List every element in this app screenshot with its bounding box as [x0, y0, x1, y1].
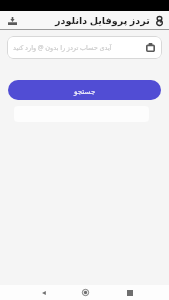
button[interactable]: Downloads: [4, 13, 20, 29]
button[interactable]: Recents: [121, 285, 139, 300]
staticText: تردز پروفایل دانلودر: [55, 14, 150, 27]
button[interactable]: جستجو: [8, 80, 161, 100]
staticText: آیدی حساب تردز را بدون @ وارد کنید: [13, 43, 112, 52]
button[interactable]: Paste: [145, 42, 156, 53]
staticText: جستجو: [74, 87, 96, 95]
button[interactable]: آیدی حساب تردز را بدون @ وارد کنید: [7, 36, 162, 59]
button[interactable]: Home: [76, 285, 94, 300]
button[interactable]: Back: [35, 285, 53, 300]
